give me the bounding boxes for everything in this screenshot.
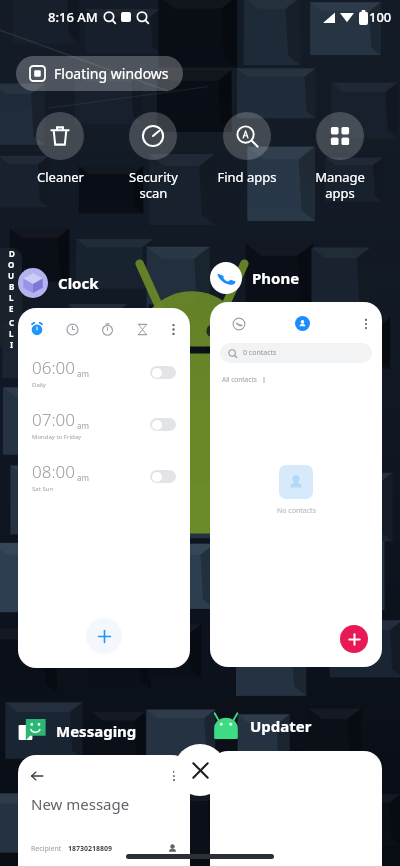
- staticText: U: [8, 270, 15, 281]
- button[interactable]: New message: [18, 755, 190, 866]
- staticText: Cleaner: [37, 168, 84, 186]
- button[interactable]: Add contact: [340, 625, 368, 653]
- staticText: L: [9, 328, 14, 339]
- button[interactable]: Find apps: [206, 110, 288, 188]
- button[interactable]: Floating windows: [16, 56, 183, 91]
- button[interactable]: Cleaner: [19, 110, 101, 188]
- staticText: 100: [369, 8, 392, 26]
- button[interactable]: 08:00: [18, 460, 190, 493]
- staticText: 8:16 AM: [48, 8, 98, 26]
- staticText: Sat Sun: [32, 485, 54, 493]
- button[interactable]: 06:00: [18, 308, 190, 668]
- staticText: Updater: [250, 716, 312, 736]
- button[interactable]: Toggle alarm: [150, 470, 176, 483]
- staticText: D: [9, 248, 15, 259]
- staticText: Find apps: [217, 168, 277, 186]
- staticText: 18730218809: [68, 844, 113, 854]
- staticText: am: [77, 420, 89, 431]
- staticText: Security scan: [129, 168, 178, 201]
- staticText: am: [77, 472, 89, 483]
- staticText: Phone: [252, 268, 300, 288]
- button[interactable]: Add alarm: [86, 618, 122, 654]
- staticText: Floating windows: [54, 64, 169, 83]
- staticText: 08:00: [32, 460, 75, 483]
- staticText: Monday to Friday: [32, 433, 82, 441]
- staticText: Daily: [32, 381, 46, 389]
- button[interactable]: Toggle alarm: [150, 418, 176, 431]
- staticText: New message: [31, 794, 130, 814]
- staticText: B: [9, 281, 15, 292]
- staticText: am: [77, 368, 89, 379]
- button[interactable]: Security scan: [112, 110, 194, 203]
- button[interactable]: 0 contacts: [210, 302, 382, 667]
- button[interactable]: Manage apps: [299, 110, 381, 203]
- staticText: Manage apps: [315, 168, 365, 201]
- button[interactable]: 07:00: [18, 408, 190, 441]
- staticText: I: [10, 339, 14, 348]
- button[interactable]: [210, 751, 382, 866]
- staticText: 0 contacts: [243, 348, 277, 358]
- button[interactable]: Toggle alarm: [150, 366, 176, 379]
- staticText: Recipient: [31, 844, 62, 854]
- button[interactable]: 0 contacts: [220, 343, 372, 363]
- button[interactable]: Close all: [174, 744, 226, 796]
- staticText: L: [9, 292, 14, 303]
- staticText: No contacts: [277, 506, 316, 516]
- staticText: 06:00: [32, 356, 75, 379]
- staticText: C: [9, 317, 15, 328]
- button[interactable]: 06:00: [18, 356, 190, 389]
- staticText: O: [8, 259, 15, 270]
- staticText: E: [9, 303, 14, 314]
- button[interactable]: Double click: [0, 248, 22, 348]
- staticText: 07:00: [32, 408, 75, 431]
- staticText: All contacts: [222, 375, 257, 384]
- staticText: Messaging: [56, 721, 137, 741]
- staticText: Clock: [58, 273, 99, 293]
